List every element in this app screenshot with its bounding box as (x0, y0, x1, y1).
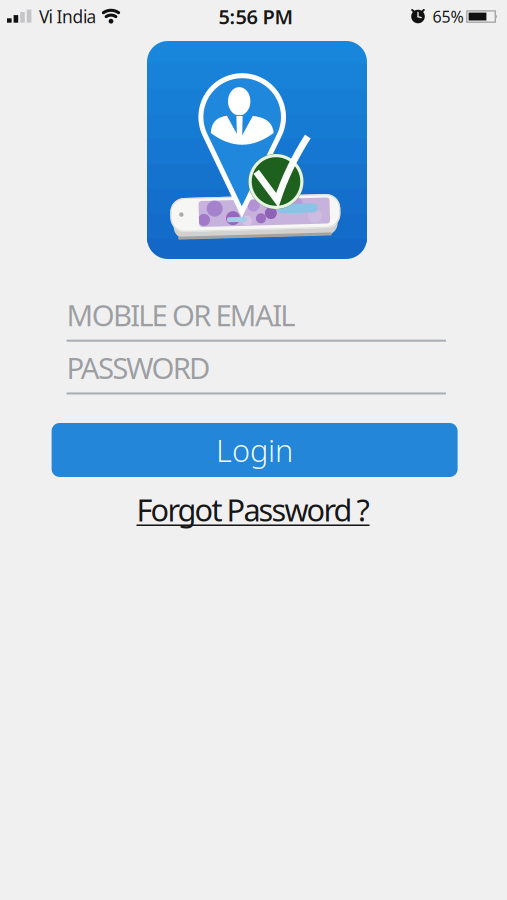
staticText: PASSWORD (67, 348, 210, 387)
staticText: 65% (432, 6, 463, 27)
button[interactable]: Forgot Password ? (136, 489, 369, 530)
staticText: Vi India (39, 5, 96, 28)
staticText: Forgot Password ? (136, 489, 369, 530)
staticText: MOBILE OR EMAIL (67, 295, 295, 334)
button[interactable]: Login (52, 423, 458, 477)
button[interactable]: MOBILE OR EMAIL (67, 295, 446, 342)
button[interactable]: PASSWORD (67, 348, 446, 394)
staticText: Login (216, 430, 293, 470)
staticText: 5:56 PM (218, 3, 293, 30)
